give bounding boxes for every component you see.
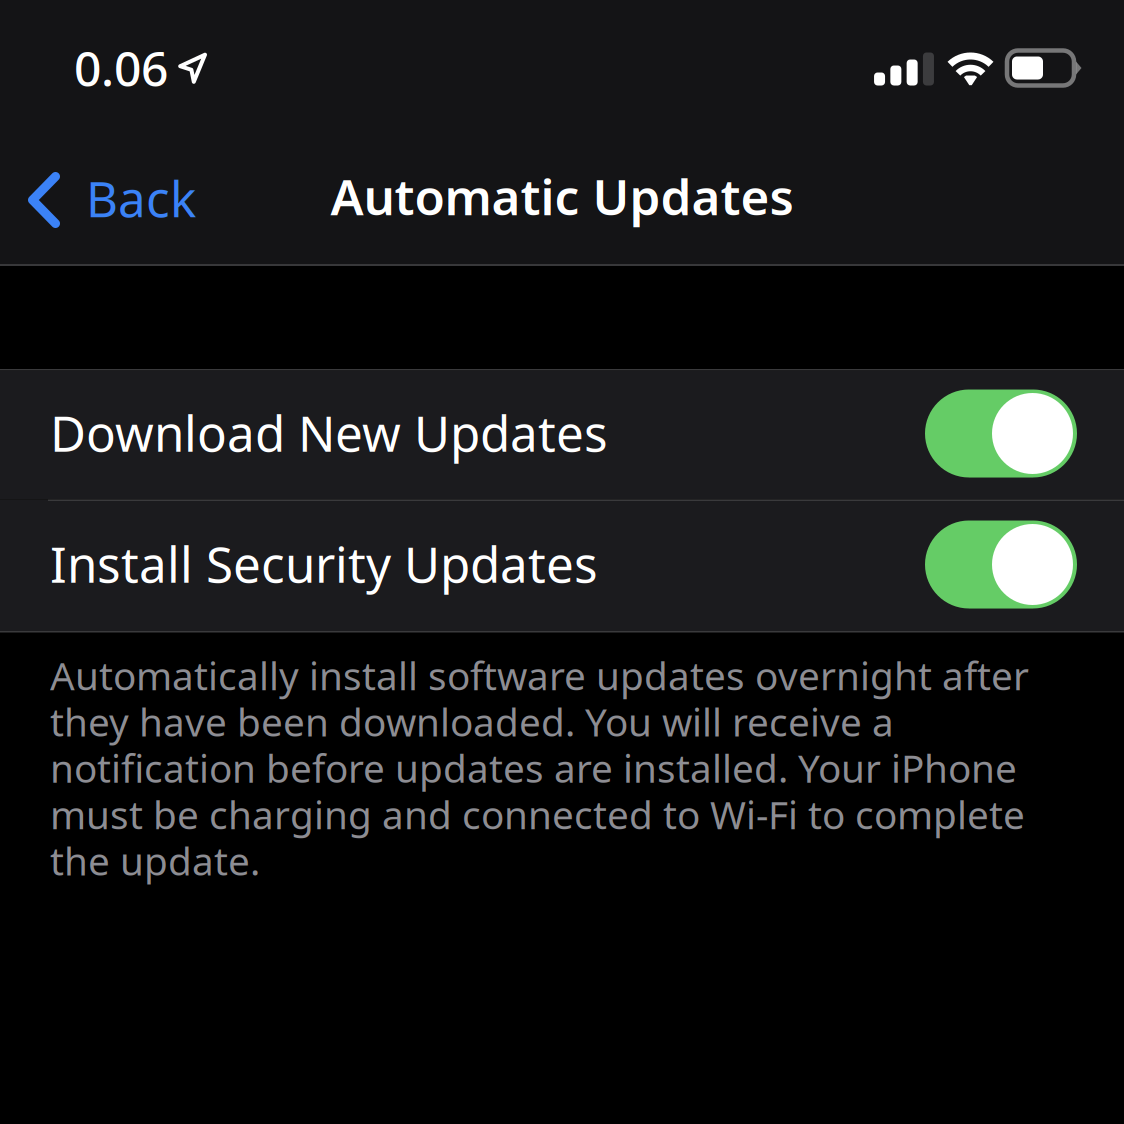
button[interactable]: Back <box>0 140 218 260</box>
staticText: Automatic Updates <box>330 163 793 229</box>
staticText: Automatically install software updates o… <box>50 649 1029 886</box>
staticText: Back <box>86 165 196 231</box>
staticText: Download New Updates <box>50 400 608 465</box>
button[interactable]: Install Security Updates <box>0 501 1124 631</box>
button[interactable]: Download New Updates <box>0 370 1124 499</box>
staticText: Install Security Updates <box>50 531 598 596</box>
staticText: 0.06 <box>74 36 168 100</box>
